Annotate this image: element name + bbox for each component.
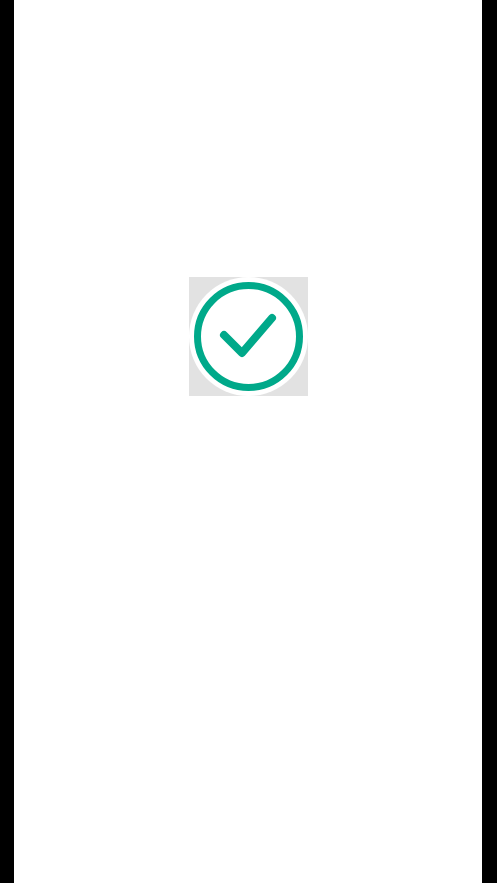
button[interactable]: Success [189, 277, 308, 396]
